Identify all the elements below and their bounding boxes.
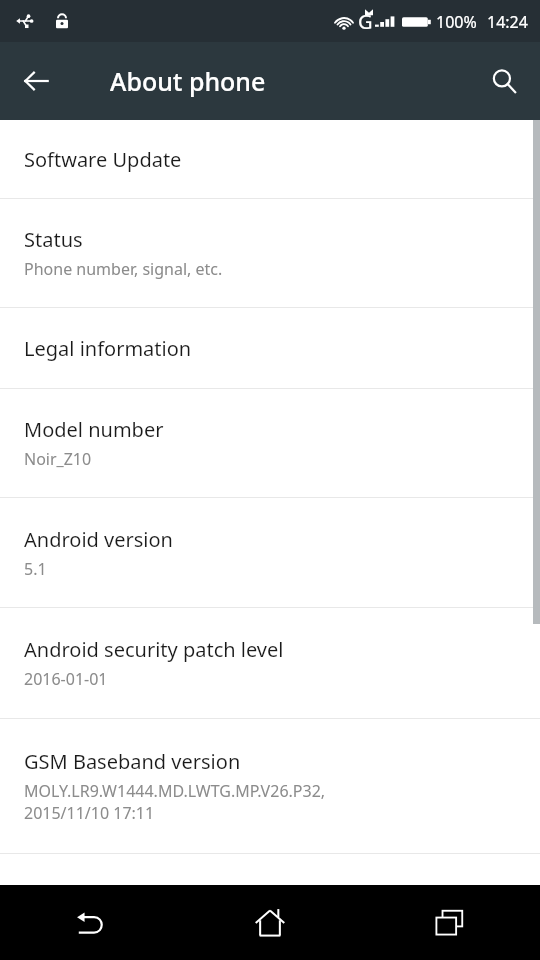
staticText: Android version (24, 526, 173, 553)
staticText: Android security patch level (24, 636, 284, 663)
button[interactable]: Legal information (0, 308, 540, 388)
button[interactable]: Android security patch level (0, 608, 540, 718)
staticText: GSM Baseband version (24, 748, 241, 775)
staticText: Status (24, 226, 83, 253)
staticText: 2016-01-01 (24, 668, 108, 690)
button[interactable]: Home (180, 885, 360, 960)
staticText: MOLY.LR9.W1444.MD.LWTG.MP.V26.P32, 2015/… (24, 780, 326, 824)
button[interactable]: Back (0, 885, 180, 960)
button[interactable]: Android version (0, 498, 540, 607)
staticText: 5.1 (24, 558, 47, 580)
button[interactable]: Recent apps (360, 885, 540, 960)
staticText: G (358, 8, 373, 35)
staticText: Software Update (24, 146, 182, 173)
staticText: Legal information (24, 335, 192, 362)
staticText: 14:24 (487, 11, 528, 33)
button[interactable]: GSM Baseband version (0, 719, 540, 853)
staticText: Model number (24, 416, 164, 443)
button[interactable]: Model number (0, 389, 540, 497)
staticText: Noir_Z10 (24, 448, 92, 470)
button[interactable]: Status (0, 199, 540, 307)
button[interactable]: Software Update (0, 120, 540, 198)
staticText: Phone number, signal, etc. (24, 258, 223, 280)
staticText: About phone (110, 64, 266, 98)
button[interactable]: Search (476, 53, 532, 109)
button[interactable]: Back (8, 53, 64, 109)
staticText: 100% (436, 11, 477, 33)
